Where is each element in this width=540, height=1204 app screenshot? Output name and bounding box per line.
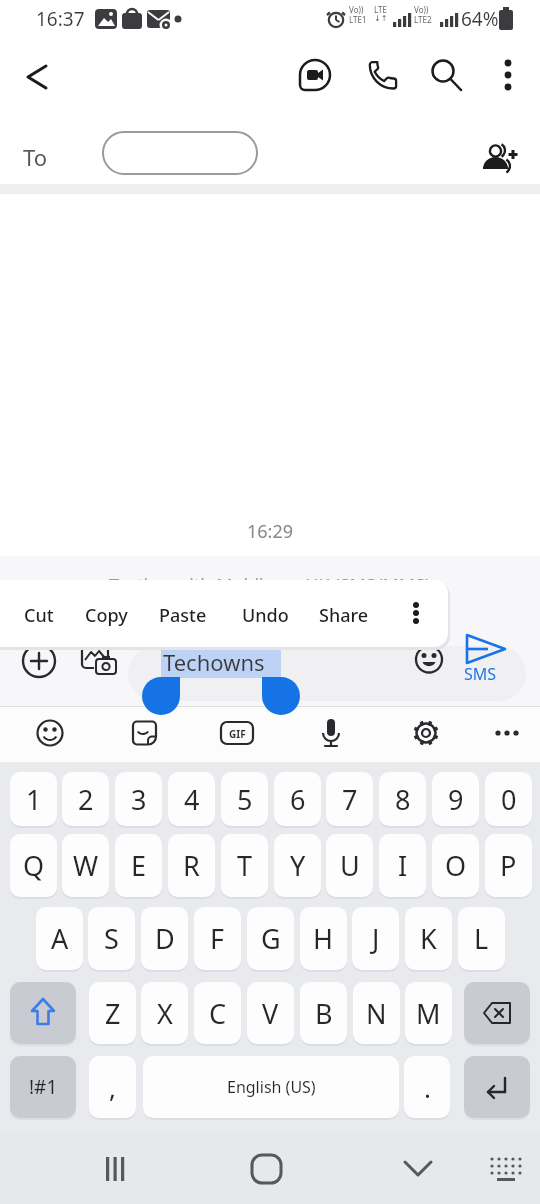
button[interactable]: K	[405, 907, 452, 970]
button[interactable]	[125, 713, 165, 753]
button[interactable]	[364, 57, 400, 93]
button[interactable]: B	[300, 982, 347, 1044]
staticText: M	[416, 995, 441, 1032]
button[interactable]: 2	[62, 772, 109, 826]
staticText: To	[23, 142, 48, 172]
staticText: English (US)	[227, 1076, 316, 1098]
button[interactable]: T	[221, 834, 268, 897]
button[interactable]: C	[194, 982, 241, 1044]
button[interactable]	[297, 57, 333, 93]
button[interactable]: S	[88, 907, 135, 970]
button[interactable]	[20, 642, 58, 680]
button[interactable]: English (US)	[143, 1056, 399, 1118]
button[interactable]: 1	[10, 772, 57, 826]
button[interactable]: 8	[379, 772, 426, 826]
staticText: V	[262, 995, 279, 1032]
button[interactable]	[396, 1147, 440, 1191]
button[interactable]: J	[352, 907, 399, 970]
button[interactable]: N	[353, 982, 400, 1044]
button[interactable]: 5	[221, 772, 268, 826]
button[interactable]	[311, 713, 351, 753]
button[interactable]: X	[141, 982, 188, 1044]
staticText: C	[209, 995, 227, 1032]
button[interactable]	[102, 131, 258, 175]
button[interactable]: .	[404, 1056, 450, 1118]
button[interactable]: Z	[89, 982, 136, 1044]
staticText: S	[104, 920, 119, 957]
button[interactable]: ,	[89, 1056, 136, 1118]
button[interactable]: I	[379, 834, 426, 897]
button[interactable]: 7	[326, 772, 373, 826]
staticText: LTE1	[349, 14, 367, 25]
staticText: K	[420, 920, 437, 957]
staticText: D	[155, 920, 175, 957]
button[interactable]	[413, 643, 445, 675]
staticText: 16:37	[36, 6, 85, 32]
button[interactable]: Q	[10, 834, 57, 897]
button[interactable]: D	[141, 907, 188, 970]
button[interactable]	[406, 713, 446, 753]
button[interactable]	[428, 55, 468, 95]
staticText: Undo	[242, 603, 289, 628]
staticText: 9	[448, 781, 464, 818]
staticText: ,	[109, 1070, 116, 1105]
button[interactable]	[464, 1056, 530, 1118]
button[interactable]	[80, 640, 120, 680]
button[interactable]	[311, 588, 371, 638]
button[interactable]: H	[300, 907, 347, 970]
staticText: J	[372, 920, 380, 957]
staticText: SMS	[464, 663, 497, 685]
staticText: Vo))	[414, 4, 429, 15]
button[interactable]	[151, 588, 211, 638]
staticText: F	[210, 920, 225, 957]
staticText: GIF	[229, 727, 246, 741]
staticText: G	[261, 920, 281, 957]
button[interactable]	[244, 1147, 288, 1191]
button[interactable]: R	[168, 834, 215, 897]
button[interactable]: 9	[432, 772, 479, 826]
staticText: 4	[184, 781, 200, 818]
button[interactable]: Y	[274, 834, 321, 897]
button[interactable]	[93, 1147, 137, 1191]
staticText: R	[183, 847, 200, 884]
staticText: LTE	[374, 4, 387, 15]
button[interactable]	[10, 982, 76, 1044]
button[interactable]	[476, 135, 520, 179]
button[interactable]: 6	[274, 772, 321, 826]
button[interactable]: U	[326, 834, 373, 897]
staticText: LTE2	[414, 14, 432, 25]
button[interactable]: F	[194, 907, 241, 970]
button[interactable]	[128, 646, 526, 701]
button[interactable]: V	[247, 982, 294, 1044]
button[interactable]: L	[458, 907, 505, 970]
button[interactable]	[234, 588, 294, 638]
button[interactable]: !#1	[10, 1056, 76, 1118]
button[interactable]: M	[405, 982, 452, 1044]
button[interactable]: P	[485, 834, 532, 897]
staticText: W	[73, 847, 99, 884]
button[interactable]	[18, 57, 58, 97]
button[interactable]	[492, 55, 524, 95]
button[interactable]: GIF	[217, 713, 257, 753]
button[interactable]: 0	[485, 772, 532, 826]
button[interactable]	[484, 1147, 528, 1191]
button[interactable]	[464, 982, 530, 1044]
button[interactable]	[398, 588, 434, 638]
staticText: Paste	[159, 603, 207, 628]
staticText: Copy	[85, 603, 128, 628]
button[interactable]: SMS	[458, 630, 518, 690]
button[interactable]: W	[62, 834, 109, 897]
staticText: Cut	[24, 603, 54, 628]
button[interactable]	[16, 588, 76, 638]
button[interactable]	[487, 713, 527, 753]
staticText: 64%	[461, 6, 499, 32]
button[interactable]	[30, 713, 70, 753]
button[interactable]: 4	[168, 772, 215, 826]
button[interactable]: A	[36, 907, 83, 970]
button[interactable]: O	[432, 834, 479, 897]
button[interactable]: 3	[115, 772, 162, 826]
button[interactable]: E	[115, 834, 162, 897]
button[interactable]: G	[247, 907, 294, 970]
button[interactable]	[77, 588, 137, 638]
staticText: E	[131, 847, 147, 884]
